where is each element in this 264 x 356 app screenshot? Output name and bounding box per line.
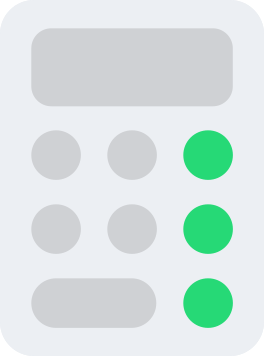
button[interactable]: Key three	[31, 204, 81, 254]
button[interactable]: Key two	[107, 130, 157, 180]
button[interactable]: Key four	[107, 204, 157, 254]
button[interactable]: Accent two	[183, 204, 233, 254]
button[interactable]: Accent three	[183, 278, 233, 328]
button[interactable]: Key one	[31, 130, 81, 180]
button[interactable]: Key five	[31, 278, 156, 328]
button[interactable]: Display	[31, 28, 233, 106]
button[interactable]: Accent one	[183, 130, 233, 180]
